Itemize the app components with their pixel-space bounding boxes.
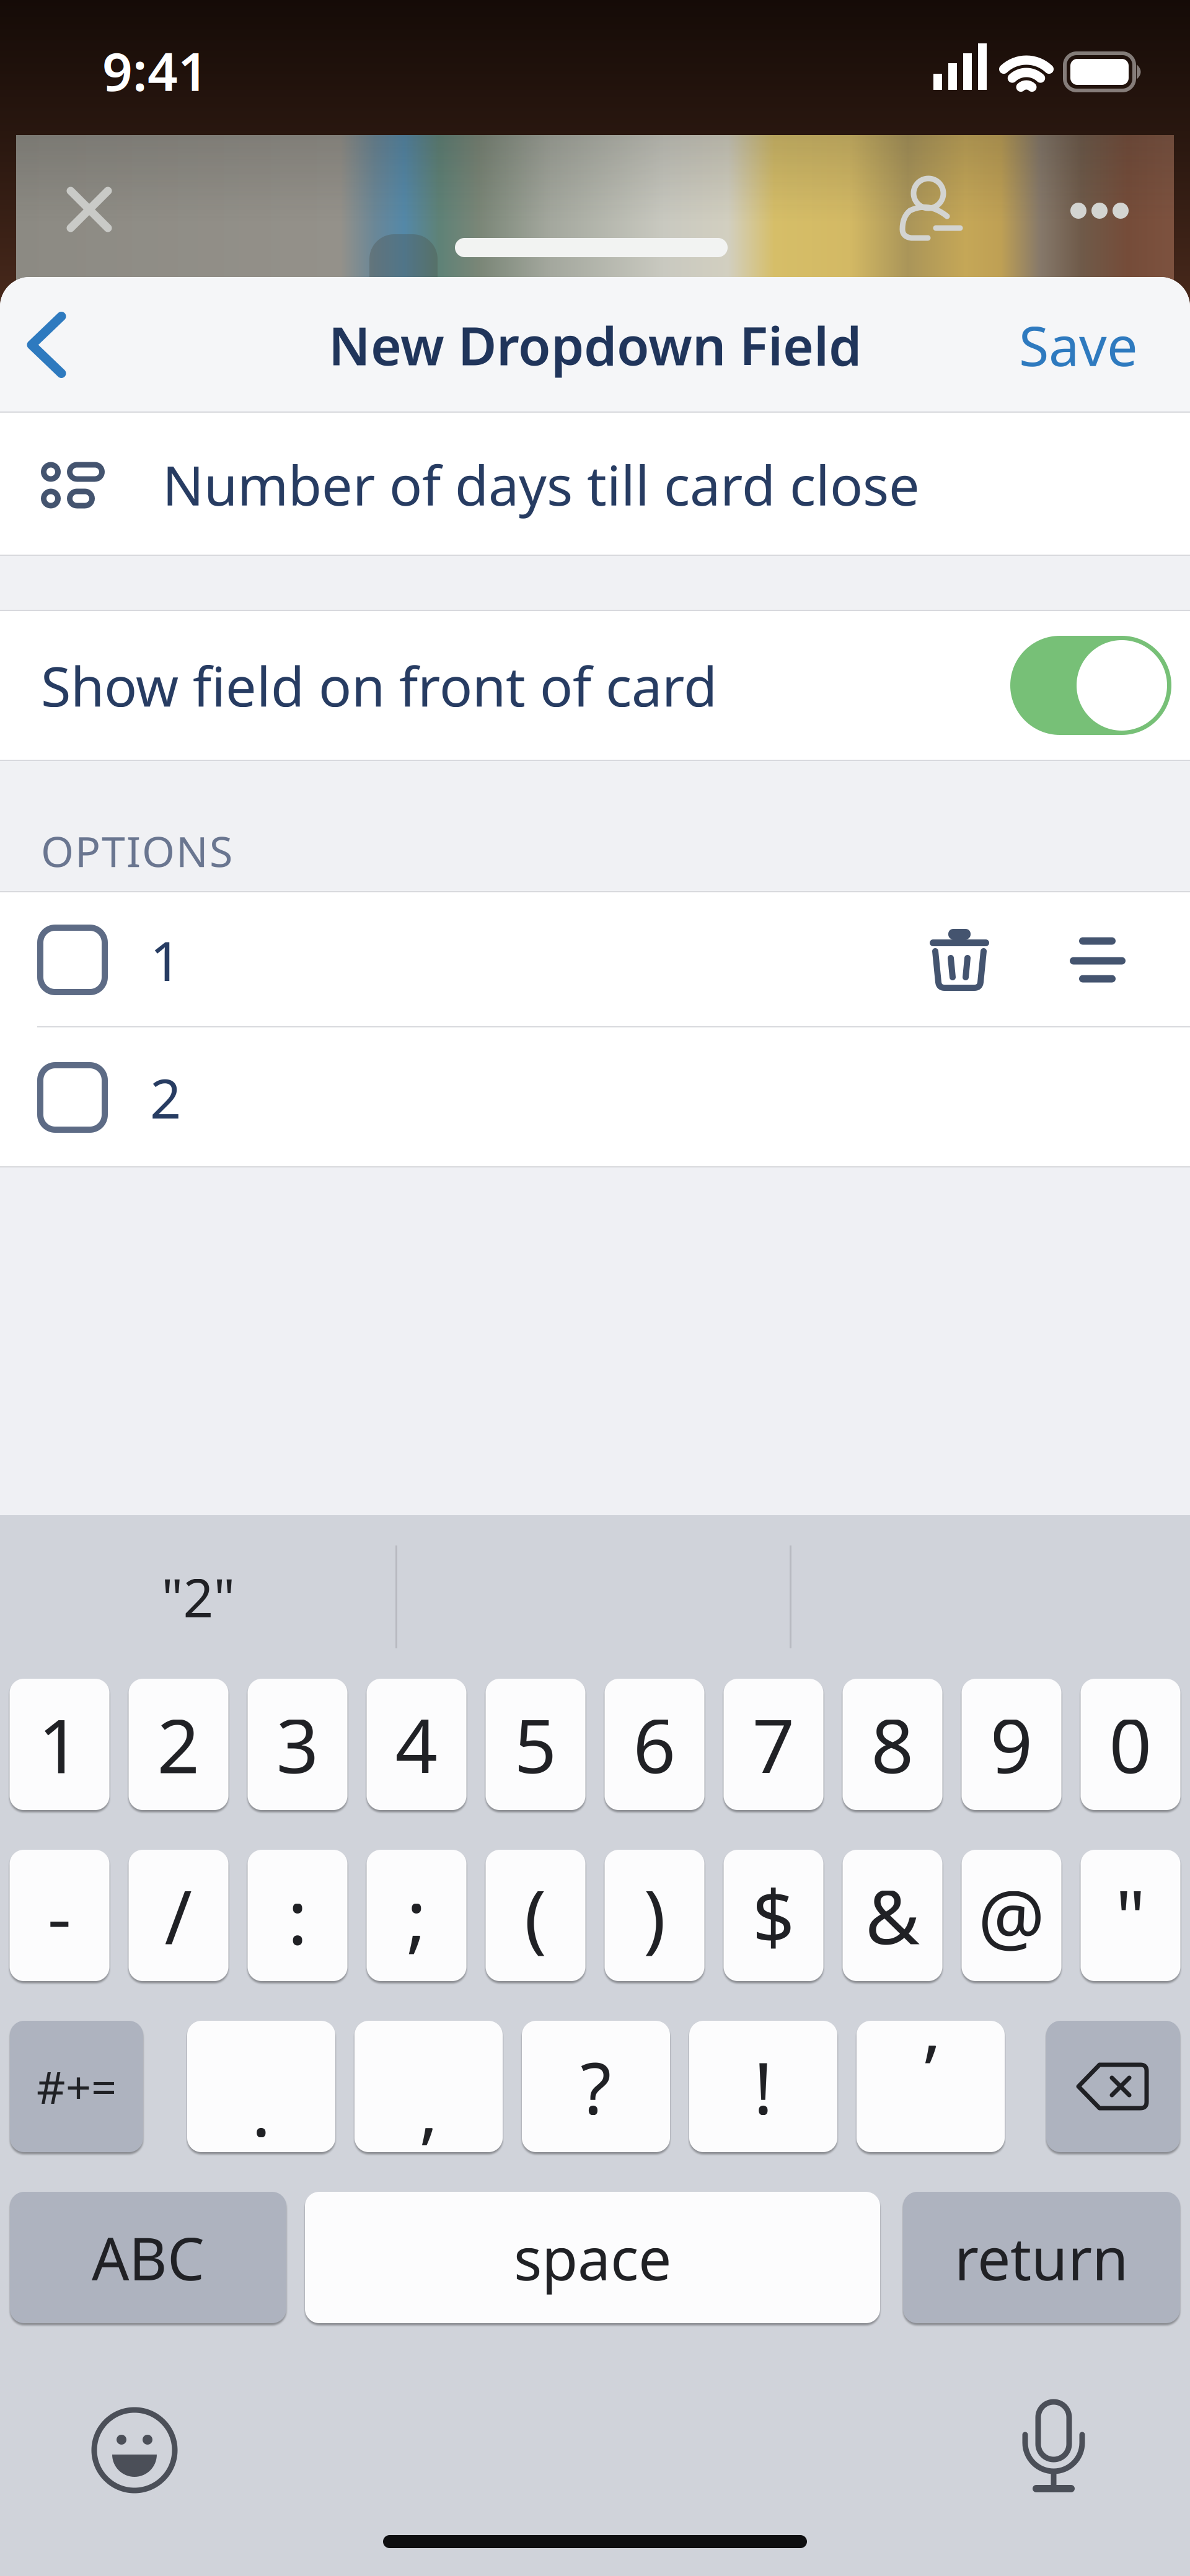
staticText: " — [1115, 1866, 1146, 1965]
staticText: 8 — [871, 1695, 914, 1794]
staticText: return — [954, 2219, 1129, 2296]
staticText: . — [252, 2062, 271, 2156]
staticText: #+= — [37, 2057, 117, 2116]
staticText: 5 — [514, 1695, 557, 1794]
staticText: ! — [754, 2039, 773, 2134]
button[interactable]: Delete option — [930, 929, 989, 991]
staticText: - — [47, 1866, 72, 1965]
button[interactable]: 5 — [486, 1679, 585, 1810]
button[interactable]: Remove member — [899, 177, 963, 241]
button[interactable]: Back — [0, 312, 67, 378]
button[interactable]: return — [903, 2192, 1180, 2323]
staticText: 6 — [633, 1695, 676, 1794]
button[interactable]: ? — [522, 2021, 670, 2152]
button[interactable]: $ — [724, 1850, 823, 1981]
button[interactable]: 6 — [605, 1679, 704, 1810]
button[interactable]: 1 — [10, 1679, 109, 1810]
button[interactable]: ! — [689, 2021, 837, 2152]
button[interactable]: Dictation — [1024, 2402, 1083, 2492]
staticText: & — [865, 1866, 920, 1965]
button[interactable]: space — [305, 2192, 880, 2323]
button[interactable]: & — [843, 1850, 942, 1981]
button[interactable]: Show field on front of card — [1010, 636, 1171, 735]
button[interactable]: - — [10, 1850, 109, 1981]
staticText: ( — [524, 1866, 547, 1965]
staticText: , — [419, 2062, 438, 2156]
staticText: space — [514, 2219, 671, 2296]
staticText: ? — [580, 2039, 611, 2134]
button[interactable]: ; — [367, 1850, 466, 1981]
button[interactable]: Select option 2 — [0, 1062, 108, 1133]
button[interactable]: " — [1081, 1850, 1180, 1981]
staticText: ’ — [924, 2022, 937, 2116]
button[interactable]: ) — [605, 1850, 704, 1981]
staticText: ; — [407, 1866, 426, 1965]
staticText: Save — [1019, 309, 1138, 381]
staticText: 0 — [1109, 1695, 1152, 1794]
staticText: New Dropdown Field — [328, 310, 862, 380]
button[interactable]: Reorder option — [989, 937, 1190, 983]
button[interactable]: More options — [1070, 203, 1129, 219]
button[interactable]: 2 — [129, 1679, 228, 1810]
button[interactable]: ’ — [857, 2021, 1005, 2152]
button[interactable]: . — [187, 2021, 335, 2152]
button[interactable]: Select option 1 — [0, 925, 108, 995]
button[interactable]: : — [248, 1850, 347, 1981]
staticText: : — [288, 1866, 307, 1965]
button[interactable]: 0 — [1081, 1679, 1180, 1810]
staticText: 9 — [990, 1695, 1033, 1794]
button[interactable]: ABC — [10, 2192, 286, 2323]
staticText: "2" — [161, 1562, 235, 1632]
staticText: Number of days till card close — [162, 448, 920, 521]
button[interactable]: 9 — [962, 1679, 1061, 1810]
staticText: / — [165, 1866, 192, 1965]
staticText: @ — [978, 1866, 1045, 1965]
button[interactable]: Close — [67, 187, 112, 232]
button[interactable]: Save — [1019, 309, 1190, 381]
staticText: 7 — [752, 1695, 795, 1794]
button[interactable]: 7 — [724, 1679, 823, 1810]
button[interactable]: 4 — [367, 1679, 466, 1810]
staticText: ABC — [92, 2219, 205, 2296]
button[interactable]: #+= — [10, 2021, 143, 2152]
staticText: 2 — [150, 1061, 181, 1134]
button[interactable]: 8 — [843, 1679, 942, 1810]
staticText: 1 — [150, 924, 181, 996]
staticText: Show field on front of card — [41, 649, 717, 722]
staticText: 4 — [395, 1695, 438, 1794]
button[interactable]: / — [129, 1850, 228, 1981]
button[interactable]: "2" — [0, 1515, 397, 1679]
button[interactable]: Emoji — [94, 2410, 175, 2490]
staticText: $ — [752, 1866, 795, 1965]
button[interactable]: ( — [486, 1850, 585, 1981]
staticText: 9:41 — [102, 35, 208, 106]
button[interactable]: 3 — [248, 1679, 347, 1810]
staticText: 2 — [157, 1695, 200, 1794]
staticText: OPTIONS — [41, 823, 232, 879]
button[interactable]: @ — [962, 1850, 1061, 1981]
staticText: 1 — [38, 1695, 81, 1794]
staticText: ) — [643, 1866, 666, 1965]
staticText: 3 — [276, 1695, 319, 1794]
button[interactable]: Delete — [1046, 2021, 1180, 2152]
button[interactable]: , — [355, 2021, 503, 2152]
